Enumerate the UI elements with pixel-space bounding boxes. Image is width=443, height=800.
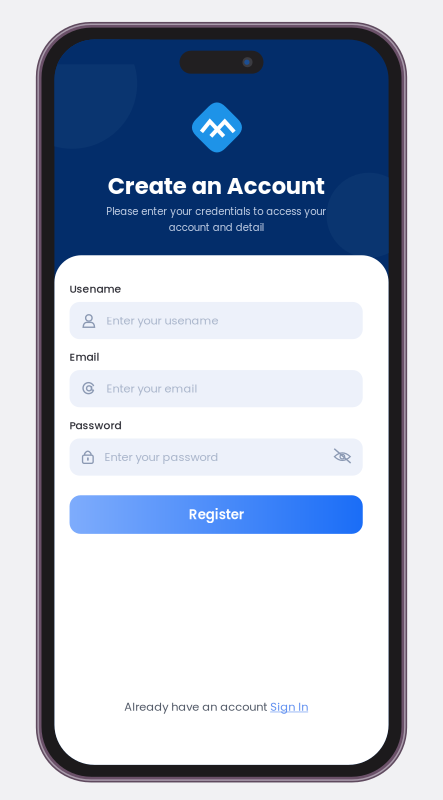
staticText: Enter your usename (106, 313, 218, 328)
staticText: Please enter your credentials to access … (106, 204, 326, 218)
staticText: Register (189, 505, 244, 524)
staticText: Password (69, 418, 121, 433)
button[interactable]: Register (69, 495, 363, 534)
staticText: Enter your email (106, 381, 197, 397)
staticText: Email (69, 350, 99, 364)
staticText: Enter your password (104, 449, 218, 465)
staticText: Usename (69, 281, 121, 296)
staticText: Already have an account (124, 699, 270, 715)
button[interactable]: Sign In (270, 699, 308, 715)
staticText: account and detail (169, 220, 264, 234)
staticText: Create an Account (108, 170, 325, 202)
staticText: Sign In (270, 699, 308, 715)
